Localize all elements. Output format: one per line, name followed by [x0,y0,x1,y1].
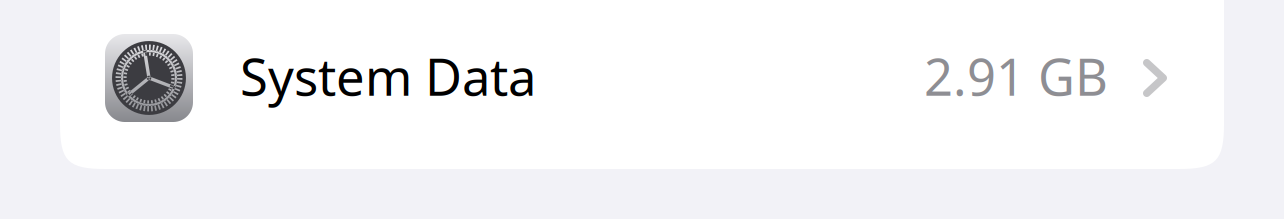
staticText: System Data [240,42,536,110]
staticText: 2.91 GB [924,42,1108,110]
button[interactable]: System Data [60,0,1224,169]
